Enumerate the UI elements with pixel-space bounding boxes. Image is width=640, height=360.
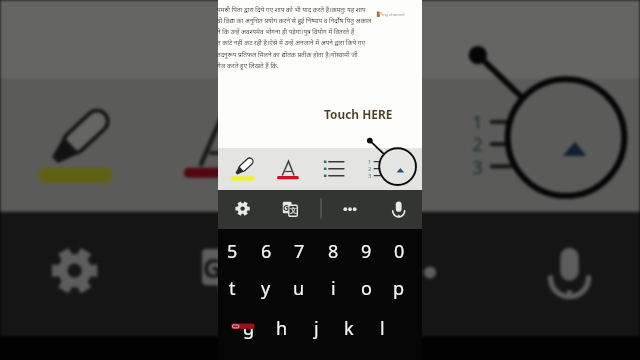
- button[interactable]: y: [250, 272, 282, 304]
- staticText: 7: [294, 239, 305, 264]
- staticText: u: [293, 276, 305, 301]
- staticText: t: [229, 276, 236, 301]
- button[interactable]: g: [233, 312, 265, 344]
- staticText: 1: [472, 110, 485, 136]
- staticText: पमरुी पिता द्वारा दिये गए शाप को भी याद …: [217, 5, 366, 14]
- staticText: 5: [227, 239, 238, 264]
- staticText: 9: [361, 239, 372, 264]
- staticText: गेज करते हुए लिखते हैं कि.: [217, 61, 279, 70]
- button[interactable]: 5: [216, 235, 248, 267]
- staticText: ने कि उन्हें अवश्यमेव भोगना ही पड़ेगा।पु…: [217, 27, 355, 36]
- button[interactable]: Settings: [47, 243, 104, 300]
- staticText: 2: [368, 165, 372, 173]
- button[interactable]: 9: [350, 235, 382, 267]
- button[interactable]: t: [216, 272, 248, 304]
- staticText: 8: [328, 239, 339, 264]
- staticText: o: [361, 276, 372, 301]
- staticText: k: [344, 316, 354, 341]
- staticText: 1: [368, 158, 372, 166]
- staticText: 0: [394, 239, 405, 264]
- staticText: p: [393, 276, 405, 301]
- button[interactable]: k: [333, 312, 365, 344]
- staticText: G: [283, 202, 290, 213]
- button[interactable]: h: [266, 312, 298, 344]
- staticText: j: [314, 316, 319, 341]
- staticText: g: [243, 316, 255, 341]
- button[interactable]: 8: [317, 235, 349, 267]
- button[interactable]: p: [383, 272, 415, 304]
- staticText: 3: [472, 155, 485, 180]
- staticText: y: [261, 276, 271, 301]
- staticText: त कांटे नहीं कट रही है।ऐसे में उन्हें अन…: [217, 38, 366, 47]
- button[interactable]: i: [317, 272, 349, 304]
- button[interactable]: 0: [383, 235, 415, 267]
- staticText: l: [380, 316, 385, 341]
- staticText: i: [331, 276, 336, 301]
- button[interactable]: Settings: [234, 200, 252, 218]
- staticText: वो विद्या का अनुचित प्रयोग करने से हुई न…: [217, 16, 372, 25]
- staticText: 文: [290, 206, 298, 215]
- button[interactable]: 6: [250, 235, 282, 267]
- button[interactable]: o: [350, 272, 382, 304]
- staticText: Touch HERE: [324, 106, 393, 122]
- staticText: 文: [225, 262, 250, 291]
- button[interactable]: l: [366, 312, 398, 344]
- staticText: my channel: [382, 12, 405, 18]
- button[interactable]: u: [283, 272, 315, 304]
- staticText: G: [203, 250, 225, 285]
- staticText: 3: [368, 172, 372, 180]
- button[interactable]: Touch HERE: [326, 0, 558, 2]
- staticText: तदनुरूप प्रतिफल मिलने का द्योतक प्रतीक ह…: [217, 50, 358, 59]
- button[interactable]: Touch HERE: [322, 104, 395, 124]
- button[interactable]: 7: [283, 235, 315, 267]
- button[interactable]: j: [300, 312, 332, 344]
- staticText: 6: [261, 239, 272, 264]
- staticText: h: [276, 316, 288, 341]
- staticText: 2: [472, 132, 485, 158]
